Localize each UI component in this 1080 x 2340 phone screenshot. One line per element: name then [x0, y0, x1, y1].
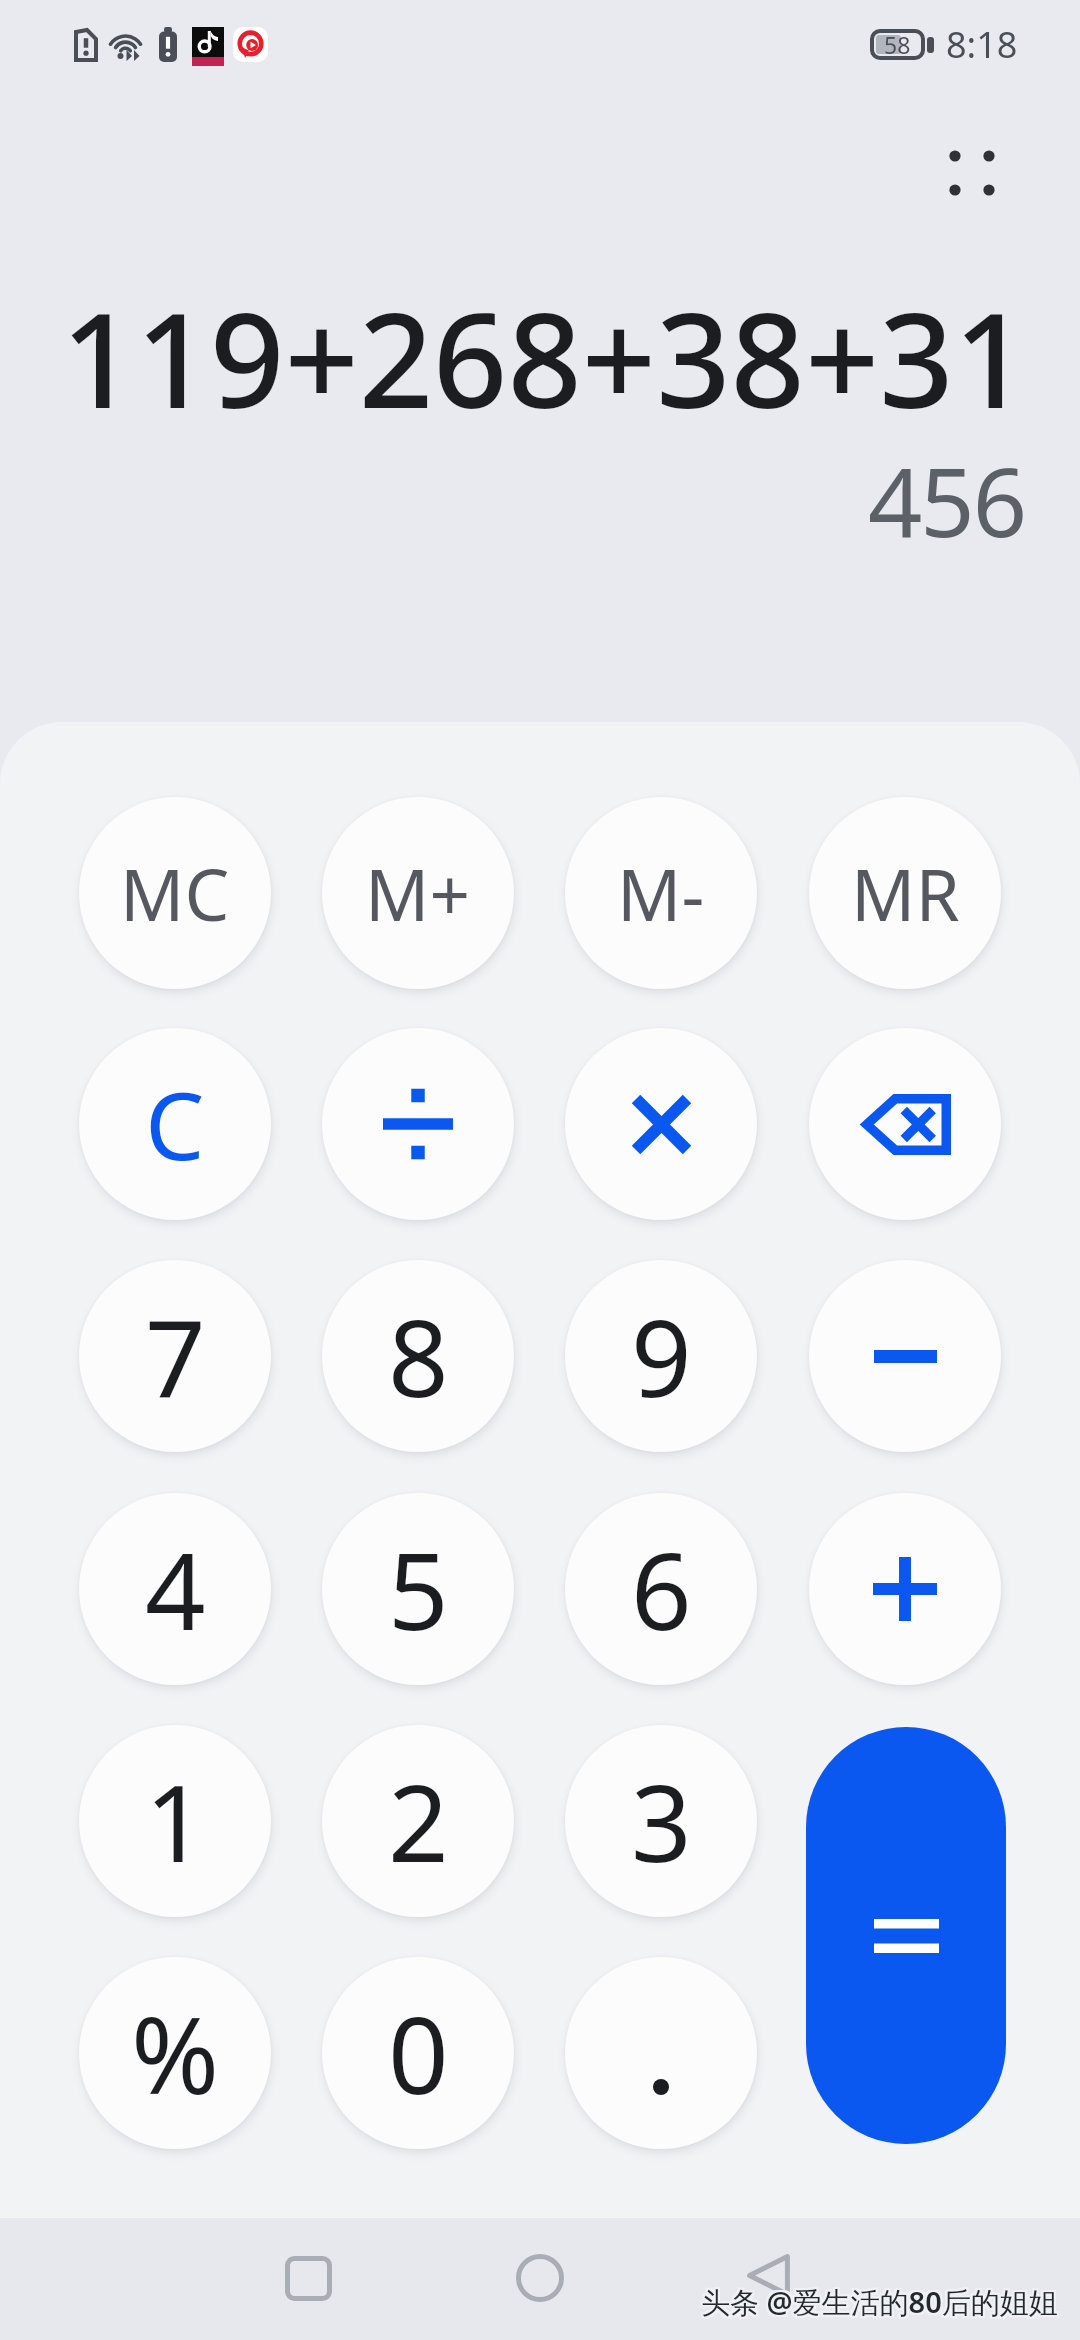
button[interactable]: Minus [809, 1260, 1001, 1452]
staticText: 头条 @爱生活的80后的姐姐 [703, 2282, 1060, 2322]
staticText: 58 [884, 29, 911, 60]
staticText: M- [617, 845, 705, 942]
button[interactable]: Back [708, 2215, 828, 2335]
staticText: 9 [631, 1284, 692, 1428]
button[interactable]: C [79, 1028, 271, 1220]
button[interactable]: 3 [565, 1725, 757, 1917]
button[interactable]: M+ [322, 797, 514, 989]
staticText: 5 [388, 1517, 449, 1661]
button[interactable]: Equals [806, 1727, 1006, 2144]
button[interactable]: % [79, 1957, 271, 2149]
staticText: 头条 @爱生活的80后的姐姐 [703, 2280, 1060, 2320]
button[interactable]: 7 [79, 1260, 271, 1452]
staticText: % [131, 1981, 220, 2125]
button[interactable]: 9 [565, 1260, 757, 1452]
button[interactable]: MR [809, 797, 1001, 989]
staticText: MC [120, 845, 230, 942]
button[interactable]: 8 [322, 1260, 514, 1452]
button[interactable]: 2 [322, 1725, 514, 1917]
staticText: 0 [388, 1981, 449, 2125]
staticText: C [145, 1060, 205, 1188]
staticText: 6 [631, 1517, 692, 1661]
button[interactable]: More options [927, 128, 1017, 218]
staticText: 7 [145, 1284, 206, 1428]
staticText: 3 [631, 1749, 692, 1893]
staticText: 头条 @爱生活的80后的姐姐 [703, 2284, 1060, 2324]
staticText: 头条 @爱生活的80后的姐姐 [701, 2284, 1058, 2324]
staticText: 头条 @爱生活的80后的姐姐 [699, 2280, 1056, 2320]
button[interactable]: 0 [322, 1957, 514, 2149]
button[interactable]: Multiply [565, 1028, 757, 1220]
staticText: 2 [388, 1749, 449, 1893]
button[interactable]: 6 [565, 1493, 757, 1685]
button[interactable]: Divide [322, 1028, 514, 1220]
staticText: 8 [388, 1284, 449, 1428]
staticText: 头条 @爱生活的80后的姐姐 [701, 2282, 1058, 2322]
staticText: 1 [145, 1749, 206, 1893]
button[interactable]: Decimal point [565, 1957, 757, 2149]
button[interactable]: 4 [79, 1493, 271, 1685]
staticText: 4 [145, 1517, 206, 1661]
button[interactable]: M- [565, 797, 757, 989]
button[interactable]: Backspace [809, 1028, 1001, 1220]
button[interactable]: Home [480, 2218, 600, 2338]
button[interactable]: Plus [809, 1493, 1001, 1685]
button[interactable]: MC [79, 797, 271, 989]
staticText: 119+268+38+31 [0, 269, 1028, 446]
staticText: 8:18 [946, 20, 1018, 69]
staticText: MR [851, 845, 960, 942]
staticText: 头条 @爱生活的80后的姐姐 [699, 2284, 1056, 2324]
button[interactable]: 1 [79, 1725, 271, 1917]
button[interactable]: Recents [248, 2218, 368, 2338]
staticText: 头条 @爱生活的80后的姐姐 [701, 2280, 1058, 2320]
staticText: M+ [365, 845, 471, 942]
button[interactable]: 5 [322, 1493, 514, 1685]
staticText: 456 [0, 435, 1025, 564]
staticText: 头条 @爱生活的80后的姐姐 [699, 2282, 1056, 2322]
